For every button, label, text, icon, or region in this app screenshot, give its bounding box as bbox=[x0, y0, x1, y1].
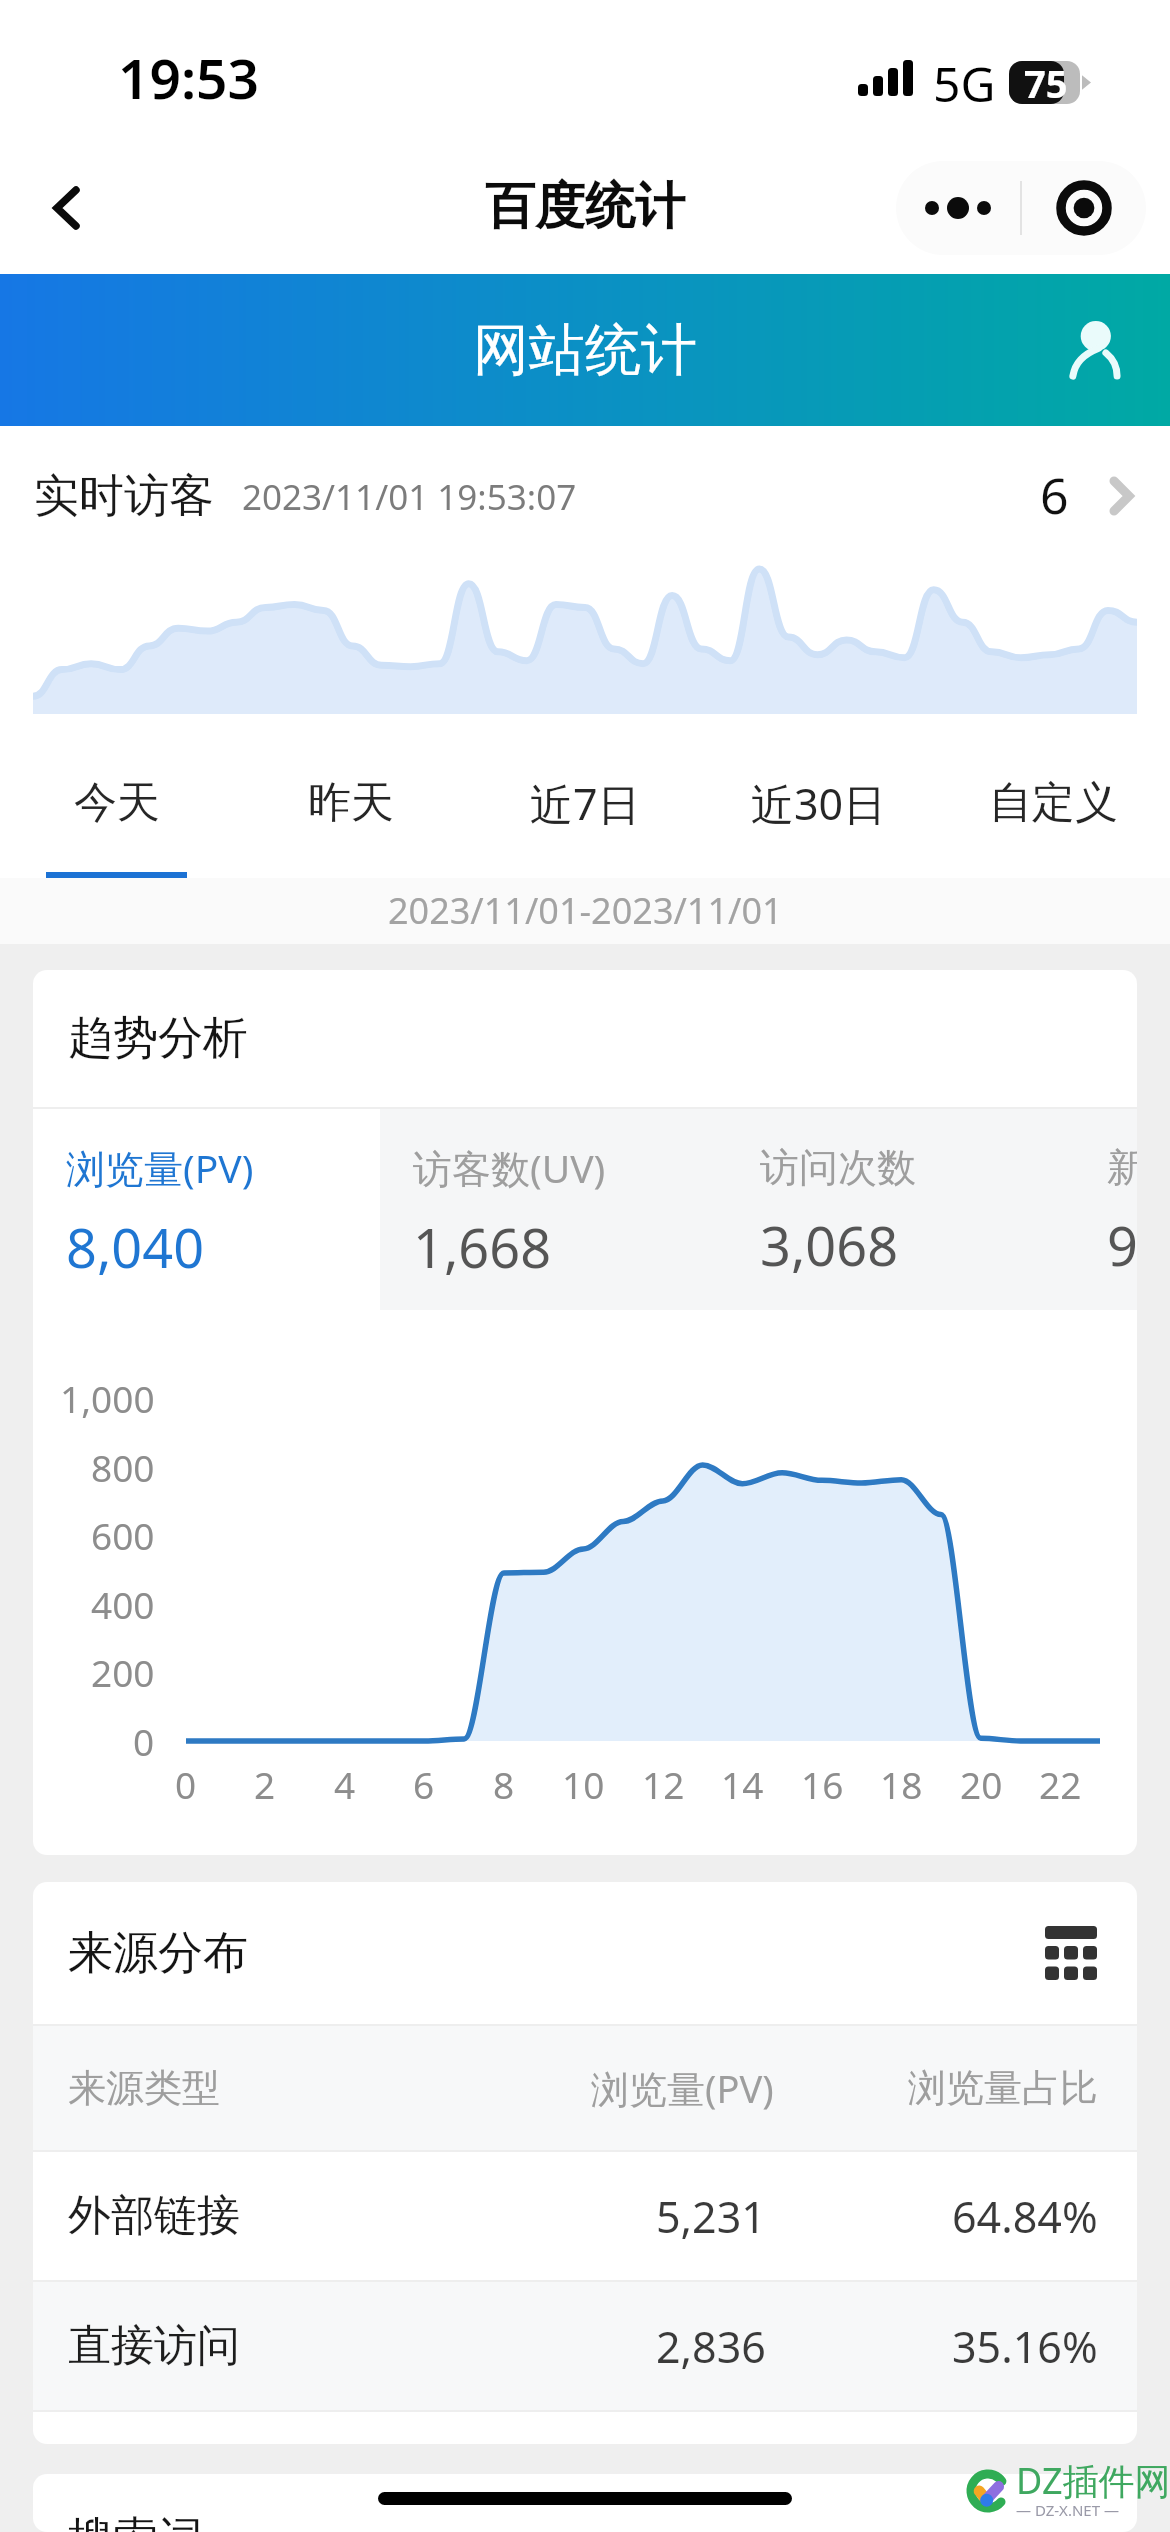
staticText: 访客数(UV) bbox=[413, 1141, 606, 1194]
button[interactable]: 直接访问 bbox=[33, 2282, 1137, 2410]
button[interactable]: 昨天 bbox=[234, 760, 468, 878]
staticText: 98.5% bbox=[1107, 1208, 1137, 1282]
button[interactable]: Back bbox=[24, 165, 110, 251]
button[interactable]: Menu bbox=[896, 161, 1146, 255]
staticText: 百度统计 bbox=[485, 175, 685, 238]
staticText: 1,000 bbox=[60, 1373, 155, 1423]
staticText: 600 bbox=[91, 1510, 155, 1560]
staticText: 20 bbox=[960, 1759, 1003, 1809]
staticText: 浏览量(PV) bbox=[66, 1141, 254, 1194]
staticText: 6 bbox=[413, 1759, 435, 1809]
staticText: 新访客数 bbox=[1107, 1143, 1137, 1192]
staticText: 8 bbox=[493, 1759, 515, 1809]
staticText: 自定义 bbox=[989, 776, 1118, 830]
button[interactable]: 访问次数 bbox=[727, 1109, 1074, 1310]
staticText: 5G bbox=[933, 51, 996, 116]
staticText: 1,668 bbox=[413, 1210, 552, 1284]
staticText: 0 bbox=[175, 1759, 197, 1809]
staticText: 趋势分析 bbox=[68, 1010, 248, 1067]
staticText: 19:53 bbox=[118, 40, 260, 115]
staticText: 75 bbox=[1024, 57, 1068, 109]
button[interactable]: 近7日 bbox=[468, 760, 702, 878]
staticText: 0 bbox=[133, 1716, 155, 1766]
staticText: DZ插件网 bbox=[1016, 2456, 1170, 2505]
staticText: 22 bbox=[1039, 1759, 1082, 1809]
staticText: 35.16% bbox=[952, 2317, 1098, 2376]
staticText: 3,068 bbox=[760, 1208, 899, 1282]
staticText: 直接访问 bbox=[68, 2319, 240, 2373]
staticText: 400 bbox=[91, 1579, 155, 1629]
staticText: 浏览量占比 bbox=[908, 2064, 1098, 2112]
staticText: 实时访客 bbox=[34, 468, 214, 525]
button[interactable]: 实时访客 bbox=[0, 426, 1170, 566]
button[interactable]: 自定义 bbox=[936, 760, 1170, 878]
button[interactable]: 访客数(UV) bbox=[380, 1109, 727, 1310]
staticText: 4 bbox=[334, 1759, 356, 1809]
staticText: 2023/11/01-2023/11/01 bbox=[388, 886, 783, 935]
staticText: 10 bbox=[562, 1759, 605, 1809]
button[interactable]: 近30日 bbox=[702, 760, 936, 878]
staticText: 12 bbox=[642, 1759, 685, 1809]
staticText: 5,231 bbox=[656, 2187, 766, 2246]
staticText: 16 bbox=[801, 1759, 844, 1809]
button[interactable]: Grid view bbox=[1031, 1913, 1111, 1993]
staticText: 近7日 bbox=[530, 774, 641, 833]
staticText: 800 bbox=[91, 1442, 155, 1492]
staticText: 近30日 bbox=[751, 774, 887, 833]
staticText: 搜索词 bbox=[68, 2511, 203, 2532]
staticText: 64.84% bbox=[952, 2187, 1098, 2246]
staticText: 200 bbox=[91, 1647, 155, 1697]
staticText: 访问次数 bbox=[760, 1143, 916, 1192]
staticText: 18 bbox=[880, 1759, 923, 1809]
button[interactable]: 浏览量(PV) bbox=[33, 1109, 380, 1310]
staticText: 8,040 bbox=[66, 1210, 205, 1284]
button[interactable]: 今天 bbox=[0, 760, 234, 878]
staticText: 今天 bbox=[74, 776, 160, 830]
staticText: 2,836 bbox=[656, 2317, 766, 2376]
button[interactable]: 新访客数 bbox=[1074, 1109, 1137, 1310]
staticText: 浏览量(PV) bbox=[591, 2062, 774, 2114]
staticText: — DZ-X.NET — bbox=[1016, 2500, 1119, 2520]
staticText: 网站统计 bbox=[473, 315, 697, 386]
button[interactable]: Account bbox=[1048, 305, 1138, 395]
staticText: 14 bbox=[721, 1759, 764, 1809]
staticText: 来源类型 bbox=[68, 2064, 220, 2112]
staticText: 外部链接 bbox=[68, 2189, 240, 2243]
staticText: 2023/11/01 19:53:07 bbox=[242, 473, 577, 521]
staticText: 昨天 bbox=[308, 776, 394, 830]
staticText: 2 bbox=[254, 1759, 276, 1809]
staticText: 来源分布 bbox=[68, 1925, 248, 1982]
button[interactable]: 外部链接 bbox=[33, 2152, 1137, 2280]
staticText: 6 bbox=[1040, 461, 1069, 529]
